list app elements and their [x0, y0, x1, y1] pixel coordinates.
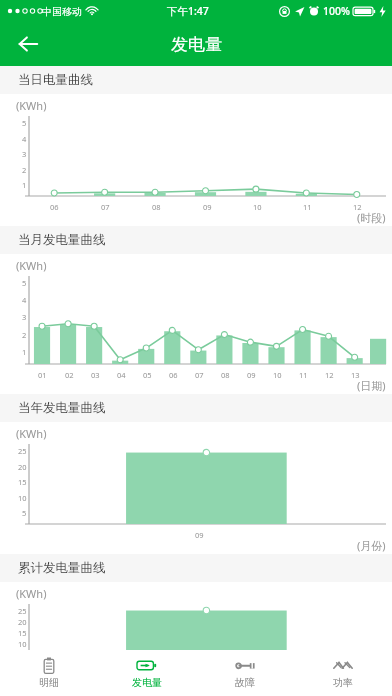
button[interactable]: 发电量	[98, 650, 196, 696]
staticText: 4	[22, 134, 27, 144]
staticText: 5	[22, 278, 27, 288]
staticText: 06	[50, 202, 59, 212]
staticText: 10	[253, 202, 262, 212]
staticText: 当日电量曲线	[18, 72, 93, 88]
staticText: 下午1:47	[167, 4, 209, 18]
staticText: 1	[22, 347, 27, 357]
button[interactable]: 明细	[0, 650, 98, 696]
staticText: 当月发电量曲线	[18, 232, 106, 248]
staticText: (KWh)	[16, 586, 47, 601]
staticText: 中国移动	[42, 5, 82, 18]
staticText: 5	[22, 508, 27, 518]
button[interactable]: 功率	[294, 650, 392, 696]
staticText: 01	[38, 370, 47, 380]
staticText: (KWh)	[16, 258, 47, 273]
staticText: 15	[18, 477, 27, 487]
staticText: 15	[18, 628, 27, 638]
staticText: 10	[273, 370, 282, 380]
staticText: 06	[169, 370, 178, 380]
staticText: (KWh)	[16, 98, 47, 113]
staticText: 累计发电量曲线	[18, 560, 106, 576]
staticText: 25	[18, 446, 27, 456]
staticText: (KWh)	[16, 426, 47, 441]
staticText: 明细	[39, 676, 59, 689]
staticText: 5	[22, 118, 27, 128]
staticText: 11	[299, 370, 308, 380]
staticText: 3	[22, 149, 27, 159]
staticText: (日期)	[357, 378, 386, 393]
staticText: 当年发电量曲线	[18, 400, 106, 416]
staticText: 故障	[235, 676, 255, 689]
staticText: 1	[22, 180, 27, 190]
staticText: 发电量	[171, 34, 222, 55]
staticText: 10	[18, 639, 27, 649]
staticText: 100%	[323, 4, 350, 18]
staticText: 发电量	[132, 676, 162, 689]
staticText: 12	[353, 202, 362, 212]
staticText: 3	[22, 312, 27, 322]
staticText: 09	[247, 370, 256, 380]
staticText: 02	[65, 370, 74, 380]
staticText: 20	[18, 617, 27, 627]
staticText: 10	[18, 493, 27, 503]
staticText: 07	[101, 202, 110, 212]
staticText: 09	[195, 530, 204, 540]
staticText: 2	[22, 165, 27, 175]
staticText: 08	[221, 370, 230, 380]
staticText: 25	[18, 606, 27, 616]
staticText: 04	[117, 370, 126, 380]
staticText: 03	[91, 370, 100, 380]
staticText: 2	[22, 330, 27, 340]
staticText: 12	[325, 370, 334, 380]
staticText: 07	[195, 370, 204, 380]
staticText: 09	[203, 202, 212, 212]
staticText: 13	[351, 370, 360, 380]
staticText: 08	[152, 202, 161, 212]
staticText: (时段)	[357, 210, 386, 225]
staticText: 11	[303, 202, 312, 212]
button[interactable]: Back	[6, 22, 50, 66]
staticText: 20	[18, 462, 27, 472]
staticText: 功率	[333, 676, 353, 689]
staticText: (月份)	[357, 538, 386, 553]
staticText: 4	[22, 295, 27, 305]
button[interactable]: 故障	[196, 650, 294, 696]
staticText: 05	[143, 370, 152, 380]
